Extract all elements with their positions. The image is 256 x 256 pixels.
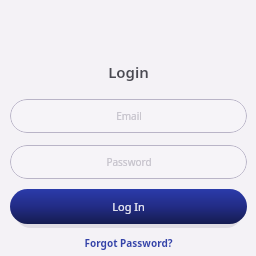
staticText: Log In	[112, 199, 145, 214]
button[interactable]: Log In	[10, 189, 247, 224]
button[interactable]: Email	[10, 99, 247, 133]
staticText: Email	[116, 109, 142, 123]
button[interactable]: Forgot Password?	[84, 236, 173, 250]
button[interactable]: Password	[10, 145, 247, 179]
staticText: Login	[108, 62, 149, 82]
staticText: Forgot Password?	[84, 236, 173, 250]
staticText: Password	[106, 155, 152, 169]
